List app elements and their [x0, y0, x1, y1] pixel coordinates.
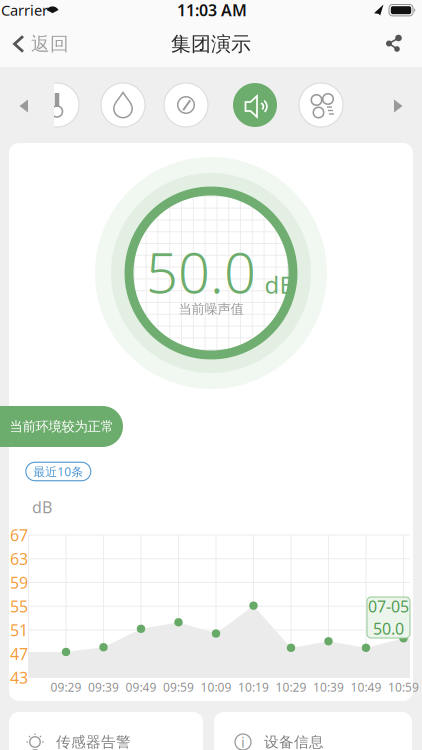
staticText: 59 [10, 572, 28, 593]
staticText: 43 [10, 667, 28, 688]
button[interactable]: 返回 [13, 32, 69, 55]
button[interactable]: 最近10条 [26, 462, 91, 481]
button[interactable]: Share [384, 33, 404, 54]
staticText: 当前环境较为正常 [9, 418, 113, 435]
button[interactable]: Humidity sensor [101, 83, 145, 127]
staticText: 07-05 [368, 596, 409, 617]
button[interactable]: Previous sensors [19, 99, 28, 112]
staticText: 55 [10, 596, 28, 617]
staticText: 设备信息 [264, 733, 324, 750]
button[interactable]: 当前环境较为正常 [0, 406, 123, 447]
staticText: 当前噪声值 [178, 301, 243, 317]
staticText: 10:09 [200, 679, 231, 695]
staticText: i [241, 732, 245, 750]
staticText: 10:19 [238, 679, 269, 695]
button[interactable]: Noise sensor [233, 83, 277, 127]
staticText: 09:59 [163, 679, 194, 695]
staticText: 集团演示 [171, 32, 251, 56]
staticText: 10:39 [313, 679, 344, 695]
staticText: Carrier [1, 0, 48, 20]
staticText: 传感器告警 [56, 733, 131, 750]
button[interactable]: i [214, 712, 412, 750]
staticText: dB [264, 269, 295, 300]
staticText: 67 [10, 524, 28, 546]
button[interactable]: Air sensor [299, 83, 343, 127]
staticText: 10:49 [350, 679, 381, 695]
staticText: 09:39 [88, 679, 119, 695]
staticText: dB [32, 496, 52, 518]
staticText: 最近10条 [33, 463, 83, 479]
staticText: 11:03 AM [177, 0, 247, 21]
staticText: 50.0 [373, 618, 404, 639]
staticText: 09:29 [50, 679, 81, 695]
staticText: 50.0 [146, 234, 256, 309]
staticText: 09:49 [125, 679, 156, 695]
staticText: 返回 [31, 32, 69, 55]
staticText: 63 [10, 548, 28, 569]
button[interactable]: More sensors [394, 99, 403, 112]
staticText: 47 [10, 643, 28, 664]
staticText: 10:59 [388, 679, 419, 695]
staticText: 10:29 [275, 679, 306, 695]
button[interactable]: 传感器告警 [9, 712, 203, 750]
button[interactable]: Pressure sensor [164, 83, 208, 127]
staticText: 51 [10, 619, 28, 641]
